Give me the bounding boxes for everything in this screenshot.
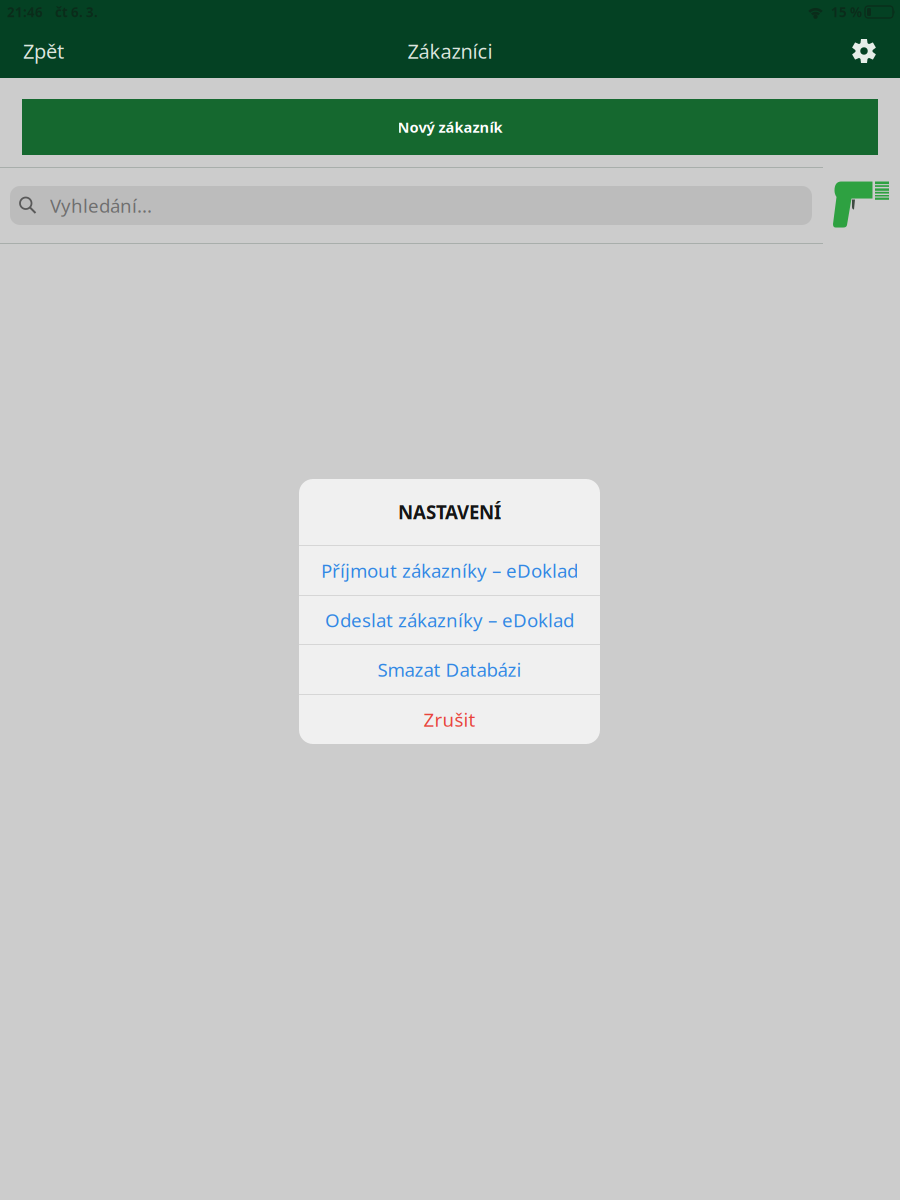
button[interactable]: Odeslat zákazníky – eDoklad xyxy=(299,596,600,644)
staticText: 15 % xyxy=(831,3,862,21)
button[interactable]: Settings xyxy=(837,24,900,78)
button[interactable]: Zpět xyxy=(0,24,115,78)
button[interactable]: Smazat Databázi xyxy=(299,645,600,694)
button[interactable]: Nový zákazník xyxy=(22,99,878,155)
staticText: Zpět xyxy=(23,38,64,64)
staticText: 21:46 xyxy=(7,3,43,21)
button[interactable]: Příjmout zákazníky – eDoklad xyxy=(299,546,600,595)
staticText: Příjmout zákazníky – eDoklad xyxy=(321,558,578,583)
button[interactable]: Zrušit xyxy=(299,695,600,744)
button[interactable]: Scan barcode xyxy=(830,175,890,231)
staticText: Zákazníci xyxy=(407,38,492,64)
staticText: Odeslat zákazníky – eDoklad xyxy=(325,608,574,632)
staticText: čt 6. 3. xyxy=(55,3,98,21)
staticText: Smazat Databázi xyxy=(377,657,521,682)
staticText: Zrušit xyxy=(423,707,475,732)
staticText: Vyhledání... xyxy=(50,193,152,218)
staticText: NASTAVENÍ xyxy=(398,500,501,524)
staticText: Nový zákazník xyxy=(397,117,502,137)
